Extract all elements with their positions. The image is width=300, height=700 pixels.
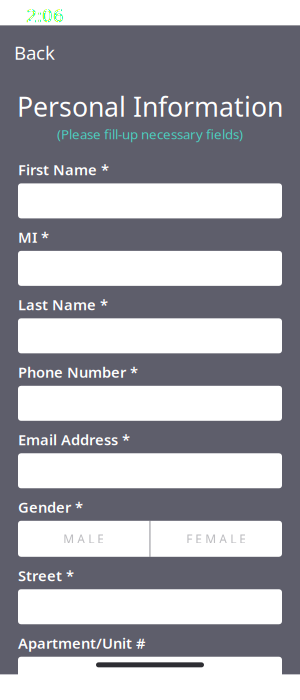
- button[interactable]: [18, 251, 282, 286]
- staticText: 2:06: [26, 3, 64, 27]
- button[interactable]: Back: [0, 34, 69, 71]
- button[interactable]: [18, 453, 282, 488]
- button[interactable]: [18, 183, 282, 218]
- staticText: MI *: [18, 227, 49, 247]
- staticText: Phone Number *: [18, 362, 138, 382]
- staticText: Last Name *: [18, 295, 108, 314]
- button[interactable]: M A L E: [18, 521, 149, 557]
- button[interactable]: F E M A L E: [150, 521, 282, 557]
- button[interactable]: [18, 318, 282, 353]
- staticText: (Please fill-up necessary fields): [57, 125, 243, 143]
- button[interactable]: [18, 589, 282, 624]
- staticText: Personal Information: [17, 89, 283, 124]
- staticText: First Name *: [18, 160, 109, 179]
- staticText: Gender *: [18, 497, 83, 517]
- staticText: Apartment/Unit #: [18, 633, 145, 653]
- button[interactable]: [18, 386, 282, 421]
- staticText: Street *: [18, 566, 74, 585]
- staticText: F E M A L E: [186, 531, 246, 547]
- staticText: Back: [14, 40, 55, 65]
- button[interactable]: [18, 657, 282, 692]
- staticText: M A L E: [63, 531, 104, 547]
- staticText: Email Address *: [18, 430, 130, 449]
